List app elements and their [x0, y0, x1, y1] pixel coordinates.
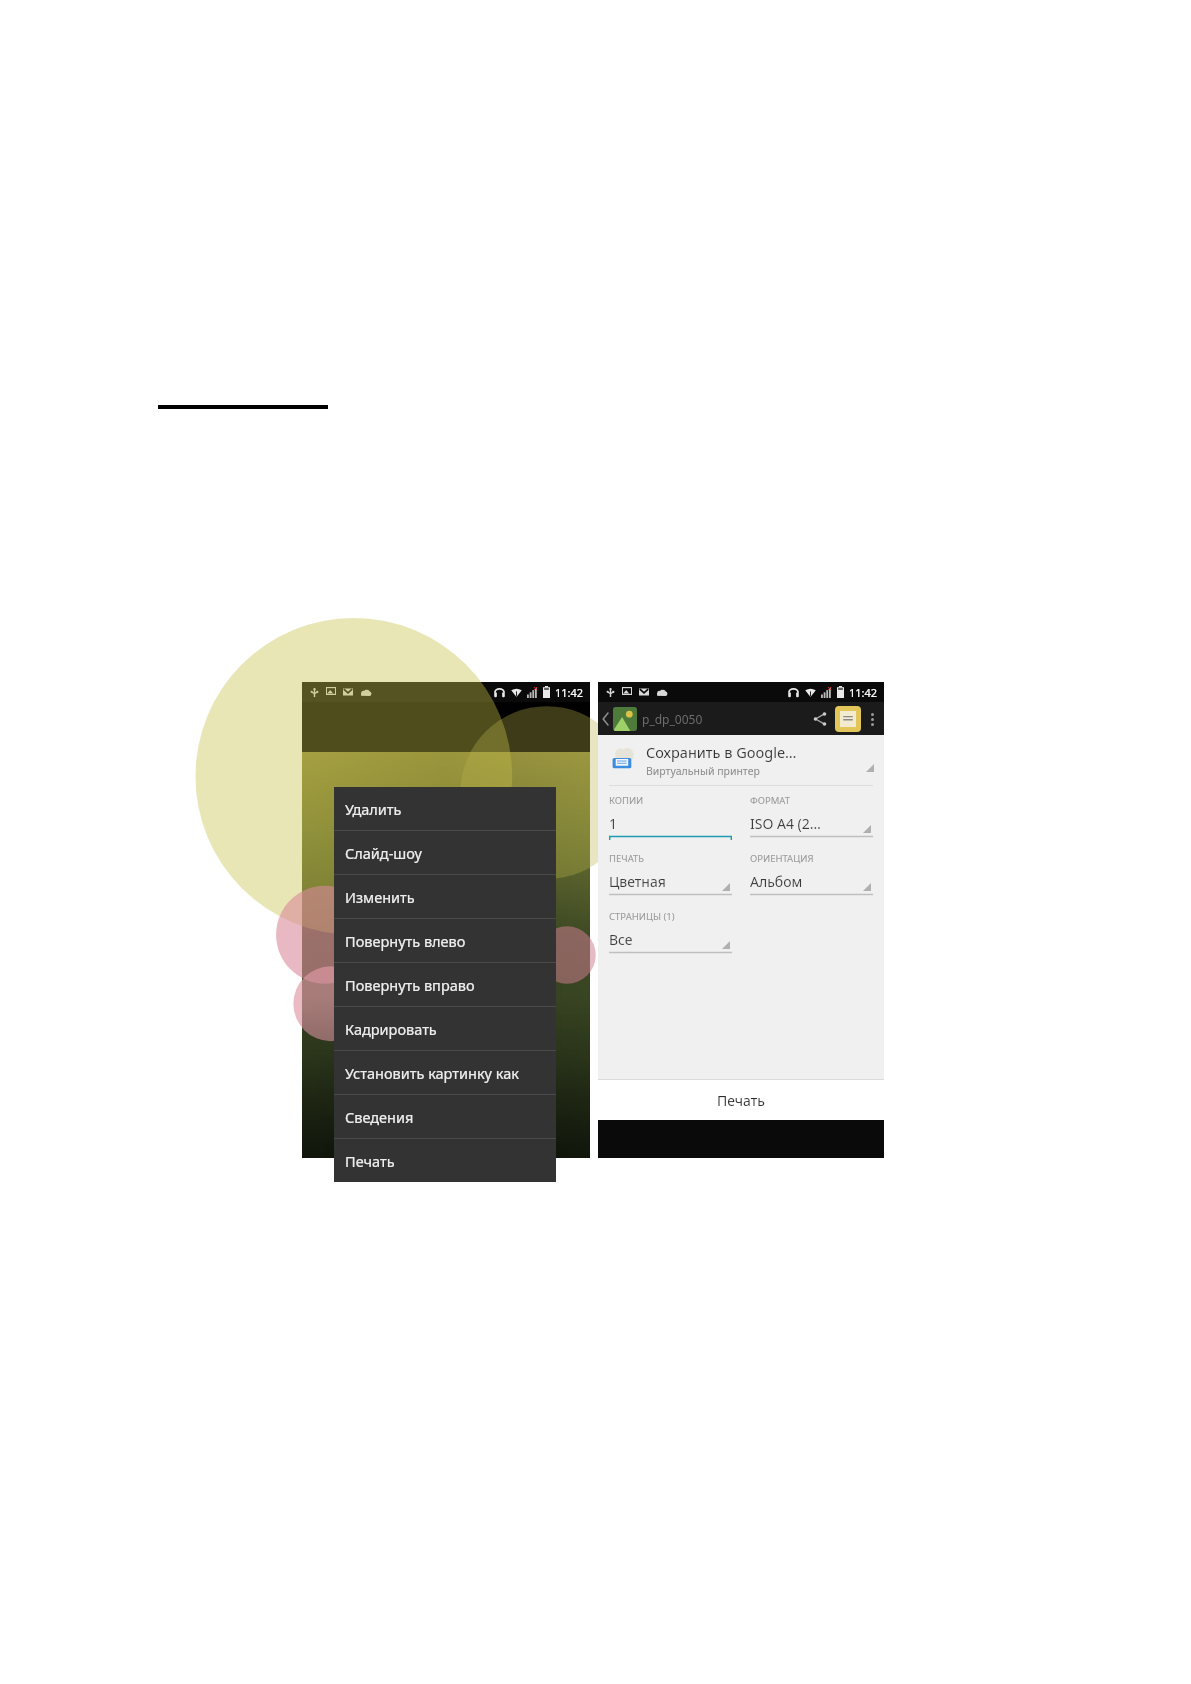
button[interactable]: Сохранить в Google…	[598, 735, 884, 785]
staticText: Повернуть вправо	[345, 975, 475, 995]
staticText: Виртуальный принтер	[646, 764, 760, 778]
button[interactable]: Повернуть вправо	[334, 963, 556, 1006]
staticText: СТРАНИЦЫ (1)	[609, 910, 675, 923]
button[interactable]: More options	[864, 711, 880, 727]
button[interactable]: Печать	[334, 1139, 556, 1182]
staticText: Сохранить в Google…	[646, 742, 797, 762]
staticText: ПЕЧАТЬ	[609, 852, 645, 865]
button[interactable]: Сведения	[334, 1095, 556, 1138]
button[interactable]: Изменить	[334, 875, 556, 918]
staticText: p_dp_0050	[642, 711, 703, 727]
button[interactable]: ОРИЕНТАЦИЯ	[750, 852, 873, 900]
staticText: Все	[609, 930, 633, 949]
button[interactable]: КОПИИ	[609, 794, 732, 842]
button[interactable]: Слайд-шоу	[334, 831, 556, 874]
button[interactable]: СТРАНИЦЫ (1)	[609, 910, 732, 958]
staticText: 1	[609, 814, 618, 833]
button[interactable]: Удалить	[334, 787, 556, 830]
button[interactable]: Кадрировать	[334, 1007, 556, 1050]
button[interactable]: Print	[835, 706, 861, 732]
staticText: Цветная	[609, 872, 666, 891]
button[interactable]: Share	[805, 704, 835, 734]
staticText: Кадрировать	[345, 1019, 437, 1039]
staticText: ОРИЕНТАЦИЯ	[750, 852, 814, 865]
button[interactable]: ФОРМАТ	[750, 794, 873, 842]
staticText: 11:42	[555, 685, 584, 700]
staticText: Альбом	[750, 872, 803, 891]
staticText: ФОРМАТ	[750, 794, 791, 807]
staticText: Слайд-шоу	[345, 843, 422, 863]
staticText: Печать	[717, 1091, 765, 1110]
staticText: ISO A4 (2…	[750, 814, 821, 833]
button[interactable]: Повернуть влево	[334, 919, 556, 962]
staticText: Установить картинку как	[345, 1063, 519, 1083]
staticText: Удалить	[345, 799, 402, 819]
button[interactable]: ПЕЧАТЬ	[609, 852, 732, 900]
staticText: 11:42	[849, 685, 878, 700]
staticText: Повернуть влево	[345, 931, 466, 951]
staticText: Изменить	[345, 887, 415, 907]
button[interactable]: Установить картинку как	[334, 1051, 556, 1094]
staticText: Печать	[345, 1151, 395, 1171]
button[interactable]: Печать	[598, 1080, 884, 1120]
staticText: Сведения	[345, 1107, 414, 1127]
staticText: КОПИИ	[609, 794, 644, 807]
